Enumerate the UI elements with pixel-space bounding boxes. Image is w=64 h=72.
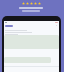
button[interactable]: More options bbox=[4, 25, 59, 28]
